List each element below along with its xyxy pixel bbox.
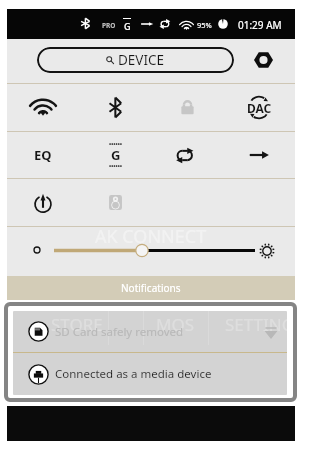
staticText: DEVICE <box>118 51 165 69</box>
staticText: G <box>111 146 121 164</box>
staticText: SD Card safely removed <box>55 324 184 340</box>
staticText: DAC <box>247 100 272 116</box>
staticText: EQ <box>34 146 52 164</box>
button[interactable]: Equalizer <box>7 132 79 178</box>
button[interactable]: Settings <box>250 47 276 73</box>
button[interactable]: Repeat <box>151 132 223 178</box>
button[interactable]: SD Card safely removed <box>13 311 287 352</box>
staticText: 95% <box>197 20 212 30</box>
button[interactable]: Gain <box>79 132 151 178</box>
staticText: Connected as a media device <box>55 366 212 382</box>
button[interactable]: Wi-Fi <box>7 84 79 131</box>
staticText: STORE <box>51 313 103 336</box>
button[interactable]: Connected as a media device <box>13 353 287 395</box>
staticText: AK CONNECT <box>95 224 207 249</box>
staticText: PRO <box>102 21 116 30</box>
button[interactable]: Next <box>223 132 295 178</box>
staticText: G <box>124 20 131 32</box>
button[interactable]: Screen lock <box>151 84 223 131</box>
button[interactable]: DAC <box>223 84 295 131</box>
staticText: MQS <box>156 313 195 336</box>
button[interactable]: Brightness <box>258 242 275 259</box>
staticText: SETTINGS <box>225 313 287 336</box>
button[interactable]: Speaker <box>79 179 151 226</box>
button[interactable]: DEVICE <box>37 47 234 73</box>
button[interactable]: Power <box>7 179 79 226</box>
staticText: Notifications <box>121 281 181 295</box>
button[interactable]: Bluetooth <box>79 84 151 131</box>
staticText: 01:29 AM <box>238 18 282 32</box>
